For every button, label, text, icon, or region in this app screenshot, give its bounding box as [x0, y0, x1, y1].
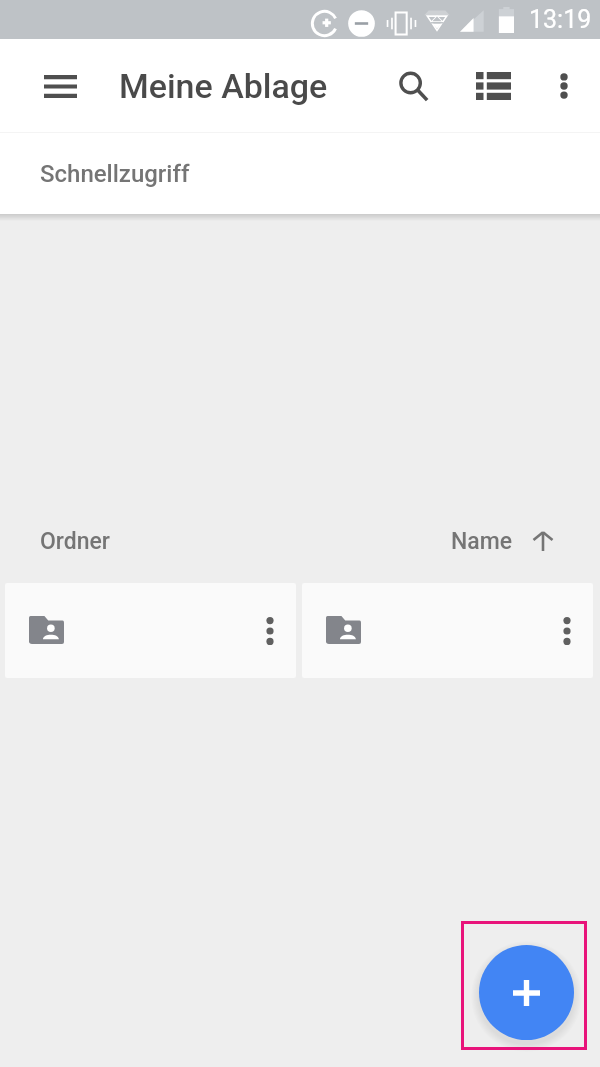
staticText: Ordner — [40, 528, 110, 555]
staticText: Schnellzugriff — [40, 160, 190, 188]
button[interactable]: Search — [387, 51, 439, 121]
button[interactable]: List view — [466, 51, 520, 121]
button[interactable]: Name — [441, 522, 564, 561]
button[interactable]: Create — [479, 945, 574, 1040]
button[interactable]: Folder options — [5, 583, 296, 678]
staticText: Name — [451, 528, 513, 555]
button[interactable]: More options — [540, 51, 588, 121]
button[interactable]: Menu — [36, 57, 84, 115]
button[interactable]: Folder options — [302, 583, 593, 678]
staticText: Meine Ablage — [119, 66, 328, 106]
staticText: 13:19 — [529, 5, 592, 34]
button[interactable]: Folder options — [549, 599, 585, 663]
button[interactable]: Folder options — [252, 599, 288, 663]
